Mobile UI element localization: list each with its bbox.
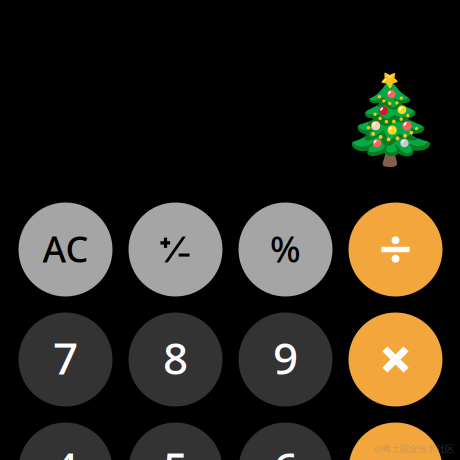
staticText: 🎄	[336, 71, 442, 168]
staticText: 7	[53, 328, 78, 387]
button[interactable]: 9	[238, 312, 332, 406]
button[interactable]: 6	[238, 422, 332, 460]
staticText: @稀土掘金技术社区	[374, 442, 454, 455]
button[interactable]: Subtract	[348, 422, 442, 460]
staticText: 8	[163, 328, 188, 387]
staticText: 6	[273, 438, 298, 460]
button[interactable]: Multiply	[348, 312, 442, 406]
button[interactable]: 8	[128, 312, 222, 406]
staticText: 5	[163, 438, 188, 460]
button[interactable]: %	[238, 202, 332, 296]
staticText: 4	[53, 438, 78, 460]
button[interactable]: 5	[128, 422, 222, 460]
staticText: %	[270, 225, 301, 272]
button[interactable]: Toggle sign	[128, 202, 222, 296]
staticText: AC	[42, 225, 88, 272]
button[interactable]: 7	[18, 312, 112, 406]
button[interactable]: 4	[18, 422, 112, 460]
button[interactable]: AC	[18, 202, 112, 296]
staticText: 9	[273, 328, 298, 387]
button[interactable]: Divide	[348, 202, 442, 296]
